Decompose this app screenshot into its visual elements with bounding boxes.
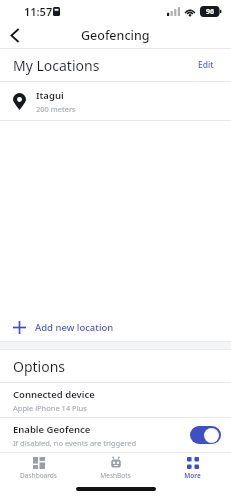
staticText: My Locations [13, 56, 100, 75]
staticText: Add new location [35, 321, 114, 334]
staticText: MeshBots [100, 471, 131, 480]
staticText: Dashboards [20, 471, 57, 480]
button[interactable]: Enable Geofence [0, 418, 231, 452]
staticText: More [184, 471, 201, 480]
button[interactable]: Back [0, 22, 30, 48]
staticText: Enable Geofence [13, 423, 91, 436]
button[interactable]: Edit [194, 53, 218, 77]
staticText: Options [13, 357, 66, 376]
staticText: Apple iPhone 14 Plus [13, 403, 87, 413]
staticText: 11:57 [24, 4, 53, 19]
button[interactable]: Itagui [0, 82, 231, 120]
staticText: Connected device [13, 388, 95, 401]
button[interactable]: More [154, 453, 231, 483]
staticText: 200 meters [36, 104, 76, 114]
button[interactable]: Enable Geofence toggle [190, 426, 221, 444]
staticText: Geofencing [81, 27, 150, 44]
staticText: 96 [206, 7, 215, 17]
staticText: Edit [198, 59, 214, 71]
button[interactable]: Dashboards [0, 453, 77, 483]
button[interactable]: MeshBots [77, 453, 154, 483]
staticText: If disabled, no events are triggered [13, 438, 137, 448]
button[interactable]: Add new location [0, 313, 231, 341]
staticText: Itagui [36, 89, 64, 102]
button[interactable]: Connected device [0, 383, 231, 417]
